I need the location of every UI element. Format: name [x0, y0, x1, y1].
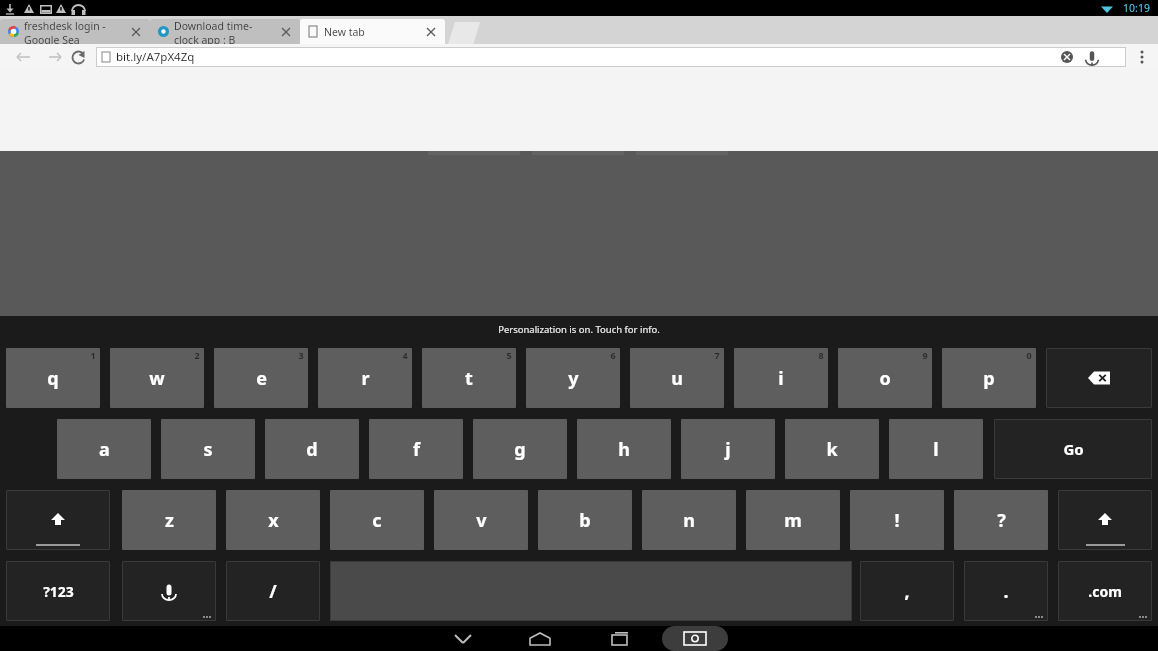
- button[interactable]: p: [942, 348, 1036, 408]
- staticText: x: [268, 508, 279, 533]
- button[interactable]: Shift: [1058, 490, 1152, 550]
- staticText: 4: [402, 349, 408, 361]
- staticText: 8: [818, 349, 824, 361]
- button[interactable]: c: [330, 490, 424, 550]
- button[interactable]: Personalization is on. Touch for info.: [0, 316, 1158, 342]
- button[interactable]: e: [214, 348, 308, 408]
- button[interactable]: Close tab: [130, 26, 142, 38]
- button[interactable]: Screenshot: [662, 626, 728, 651]
- staticText: 10:19: [1123, 1, 1150, 15]
- staticText: z: [165, 508, 174, 533]
- staticText: Download time-clock app : B: [174, 19, 274, 44]
- button[interactable]: d: [265, 419, 359, 479]
- button[interactable]: New tab: [448, 20, 480, 44]
- staticText: l: [933, 437, 939, 462]
- button[interactable]: m: [746, 490, 840, 550]
- button[interactable]: Download time-clock app : B: [150, 19, 300, 44]
- staticText: w: [149, 366, 165, 391]
- button[interactable]: Go: [994, 419, 1152, 479]
- staticText: 9: [922, 349, 928, 361]
- button[interactable]: u: [630, 348, 724, 408]
- button[interactable]: Reload: [64, 44, 92, 70]
- staticText: g: [514, 437, 526, 462]
- button[interactable]: f: [369, 419, 463, 479]
- button[interactable]: t: [422, 348, 516, 408]
- button[interactable]: w: [110, 348, 204, 408]
- button[interactable]: .com: [1058, 561, 1152, 621]
- button[interactable]: ,: [860, 561, 954, 621]
- staticText: n: [683, 508, 695, 533]
- button[interactable]: New tab: [300, 19, 445, 44]
- button[interactable]: r: [318, 348, 412, 408]
- staticText: 3: [298, 349, 304, 361]
- staticText: 5: [506, 349, 512, 361]
- staticText: 0: [1026, 349, 1032, 361]
- button[interactable]: !: [850, 490, 944, 550]
- button[interactable]: q: [6, 348, 100, 408]
- staticText: Personalization is on. Touch for info.: [498, 323, 660, 336]
- staticText: a: [99, 437, 110, 462]
- button[interactable]: freshdesk login - Google Sea: [0, 19, 150, 44]
- staticText: q: [47, 366, 59, 391]
- button[interactable]: Forward: [42, 44, 68, 70]
- button[interactable]: Close tab: [280, 26, 292, 38]
- button[interactable]: k: [785, 419, 879, 479]
- button[interactable]: Back: [10, 44, 36, 70]
- staticText: Go: [1063, 439, 1084, 459]
- staticText: freshdesk login - Google Sea: [24, 19, 124, 44]
- staticText: bit.ly/A7pX4Zq: [116, 49, 195, 65]
- staticText: .: [1003, 579, 1009, 604]
- button[interactable]: o: [838, 348, 932, 408]
- button[interactable]: More options: [1132, 47, 1152, 67]
- staticText: y: [568, 366, 579, 391]
- button[interactable]: Hide keyboard: [443, 626, 483, 651]
- button[interactable]: Close tab: [425, 26, 437, 38]
- button[interactable]: Recent apps: [598, 626, 638, 651]
- button[interactable]: x: [226, 490, 320, 550]
- staticText: f: [413, 437, 420, 462]
- button[interactable]: s: [161, 419, 255, 479]
- button[interactable]: l: [889, 419, 983, 479]
- button[interactable]: ?: [954, 490, 1048, 550]
- button[interactable]: Voice search: [1084, 49, 1100, 65]
- button[interactable]: a: [57, 419, 151, 479]
- button[interactable]: Space: [330, 561, 852, 621]
- staticText: t: [465, 366, 473, 391]
- staticText: i: [778, 366, 784, 391]
- button[interactable]: ?123: [6, 561, 110, 621]
- button[interactable]: .: [964, 561, 1048, 621]
- button[interactable]: h: [577, 419, 671, 479]
- staticText: p: [983, 366, 995, 391]
- button[interactable]: Shift: [6, 490, 110, 550]
- button[interactable]: n: [642, 490, 736, 550]
- button[interactable]: z: [122, 490, 216, 550]
- staticText: s: [203, 437, 213, 462]
- staticText: m: [784, 508, 802, 533]
- staticText: h: [618, 437, 630, 462]
- button[interactable]: Clear: [1060, 50, 1074, 64]
- staticText: e: [256, 366, 267, 391]
- button[interactable]: Voice input: [122, 561, 216, 621]
- button[interactable]: /: [226, 561, 320, 621]
- staticText: c: [372, 508, 382, 533]
- staticText: ?: [997, 508, 1006, 533]
- button[interactable]: j: [681, 419, 775, 479]
- button[interactable]: Home: [520, 626, 560, 651]
- button[interactable]: b: [538, 490, 632, 550]
- staticText: k: [826, 437, 838, 462]
- staticText: v: [476, 508, 487, 533]
- staticText: 1: [90, 349, 96, 361]
- button[interactable]: Backspace: [1046, 348, 1152, 408]
- staticText: b: [579, 508, 591, 533]
- staticText: d: [306, 437, 318, 462]
- staticText: 2: [194, 349, 200, 361]
- button[interactable]: y: [526, 348, 620, 408]
- button[interactable]: i: [734, 348, 828, 408]
- button[interactable]: bit.ly/A7pX4Zq: [96, 47, 1126, 67]
- staticText: 7: [714, 349, 720, 361]
- staticText: ?123: [43, 582, 74, 601]
- button[interactable]: v: [434, 490, 528, 550]
- button[interactable]: g: [473, 419, 567, 479]
- staticText: ,: [904, 579, 910, 604]
- staticText: New tab: [324, 25, 365, 39]
